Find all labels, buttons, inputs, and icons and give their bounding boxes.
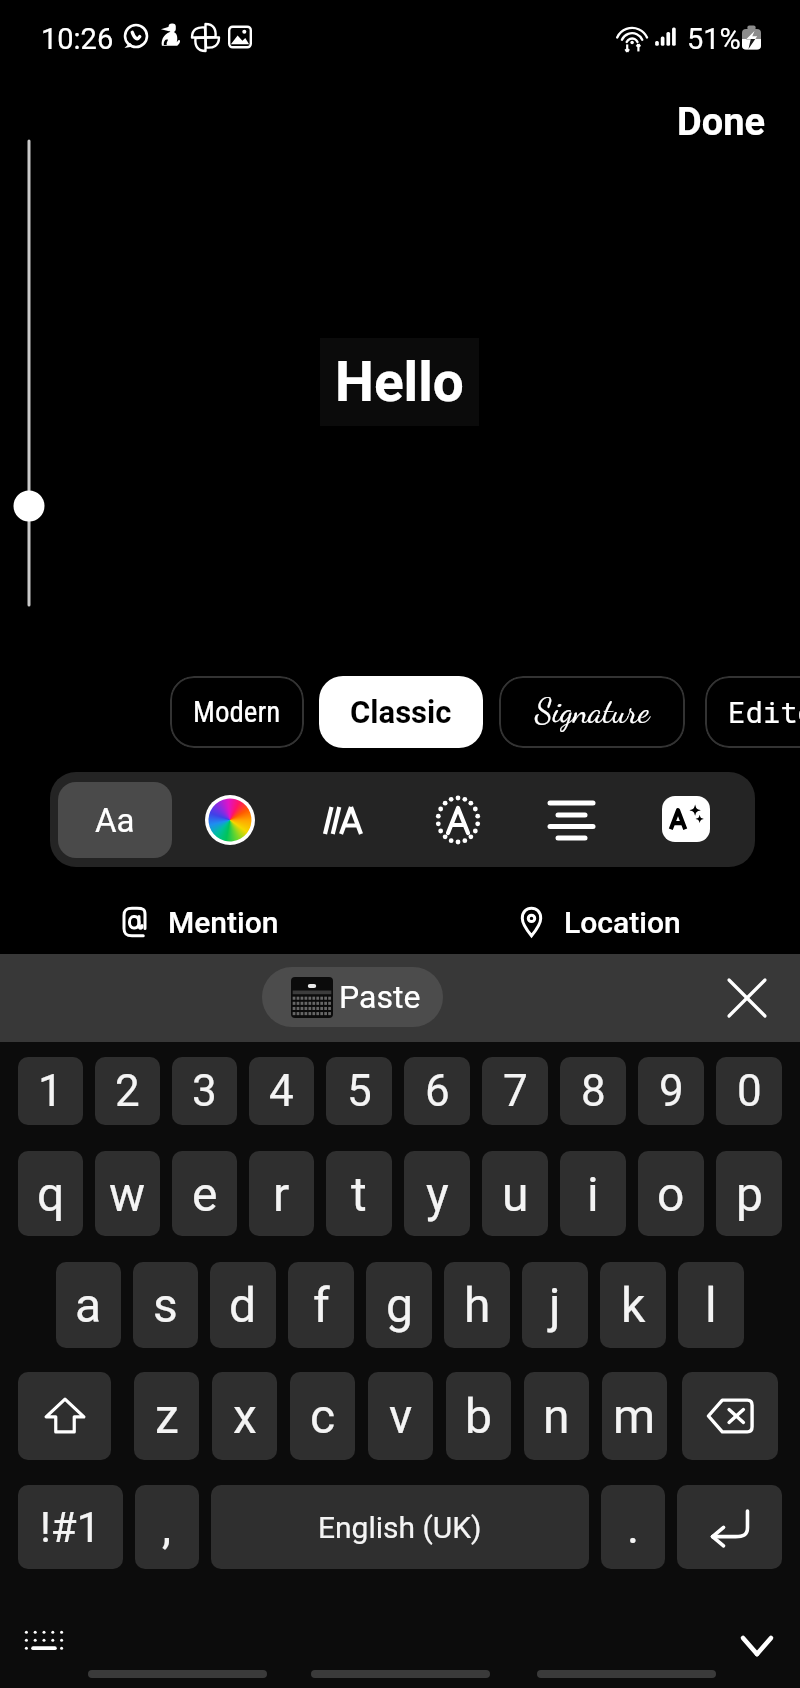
button[interactable]: u (482, 1151, 548, 1236)
staticText: Done (677, 100, 766, 145)
button[interactable]: i (560, 1151, 626, 1236)
button[interactable]: Modern (170, 676, 304, 748)
button[interactable]: 3 (172, 1057, 237, 1125)
staticText: 5 (347, 1065, 372, 1117)
staticText: y (426, 1166, 449, 1222)
staticText: u (502, 1166, 529, 1222)
staticText: r (273, 1166, 290, 1222)
button[interactable]: g (366, 1262, 432, 1348)
button[interactable]: Enter (677, 1485, 782, 1569)
staticText: m (613, 1388, 656, 1444)
staticText: 8 (581, 1065, 606, 1117)
button[interactable]: a (56, 1262, 121, 1348)
button[interactable]: Align (544, 792, 599, 847)
button[interactable]: Shift (18, 1372, 111, 1460)
button[interactable]: s (133, 1262, 198, 1348)
button[interactable]: 5 (326, 1057, 392, 1125)
staticText: Editor (728, 693, 800, 731)
button[interactable]: m (602, 1372, 667, 1460)
staticText: s (153, 1277, 178, 1333)
staticText: English (UK) (318, 1510, 482, 1545)
button[interactable]: 8 (560, 1057, 626, 1125)
staticText: 3 (192, 1065, 217, 1117)
button[interactable]: y (404, 1151, 470, 1236)
button[interactable]: n (524, 1372, 589, 1460)
button[interactable]: , (135, 1485, 199, 1569)
button[interactable]: Hello (320, 338, 479, 426)
button[interactable]: l (678, 1262, 744, 1348)
staticText: g (386, 1277, 413, 1333)
staticText: w (109, 1166, 146, 1222)
button[interactable]: Animate (662, 796, 710, 842)
staticText: o (657, 1166, 685, 1222)
staticText: Location (564, 905, 681, 940)
button[interactable]: r (249, 1151, 314, 1236)
button[interactable]: Signature (499, 676, 685, 748)
button[interactable]: d (210, 1262, 276, 1348)
button[interactable]: English (UK) (211, 1485, 589, 1569)
button[interactable]: v (368, 1372, 433, 1460)
staticText: p (736, 1166, 763, 1222)
button[interactable]: Keyboard layout (22, 1618, 66, 1662)
button[interactable]: Text style (316, 792, 371, 847)
button[interactable]: p (716, 1151, 782, 1236)
staticText: 4 (269, 1065, 294, 1117)
button[interactable]: Aa (58, 782, 172, 858)
button[interactable]: Colour (202, 792, 257, 847)
button[interactable]: 1 (18, 1057, 83, 1125)
staticText: t (351, 1166, 367, 1222)
button[interactable]: 4 (249, 1057, 314, 1125)
button[interactable]: Close (722, 973, 772, 1023)
staticText: Signature (535, 692, 650, 732)
button[interactable]: 2 (95, 1057, 160, 1125)
staticText: Hello (335, 350, 464, 414)
button[interactable]: Backspace (682, 1372, 778, 1460)
button[interactable]: 7 (482, 1057, 548, 1125)
staticText: !#1 (40, 1503, 101, 1552)
button[interactable]: . (601, 1485, 665, 1569)
staticText: 0 (737, 1065, 762, 1117)
staticText: l (705, 1277, 717, 1333)
button[interactable]: f (288, 1262, 354, 1348)
staticText: 6 (425, 1065, 450, 1117)
staticText: Mention (168, 905, 279, 940)
staticText: i (587, 1166, 599, 1222)
button[interactable]: b (446, 1372, 511, 1460)
button[interactable]: j (522, 1262, 588, 1348)
button[interactable]: c (290, 1372, 355, 1460)
button[interactable]: !#1 (18, 1485, 123, 1569)
button[interactable]: Paste (262, 967, 443, 1027)
button[interactable]: 6 (404, 1057, 470, 1125)
staticText: x (233, 1388, 257, 1444)
button[interactable]: Editor (705, 676, 800, 748)
button[interactable]: w (95, 1151, 160, 1236)
staticText: , (162, 1500, 172, 1554)
button[interactable]: 0 (716, 1057, 782, 1125)
staticText: c (310, 1388, 336, 1444)
button[interactable]: Text size (14, 138, 44, 608)
button[interactable]: Mention (0, 884, 400, 960)
staticText: z (155, 1388, 179, 1444)
button[interactable]: 9 (638, 1057, 704, 1125)
button[interactable]: o (638, 1151, 704, 1236)
staticText: v (389, 1388, 413, 1444)
button[interactable]: Glow (430, 792, 485, 847)
button[interactable]: Hide keyboard (731, 1620, 783, 1672)
button[interactable]: t (326, 1151, 392, 1236)
staticText: Aa (95, 801, 135, 840)
button[interactable]: z (134, 1372, 199, 1460)
button[interactable]: k (600, 1262, 666, 1348)
staticText: e (192, 1166, 218, 1222)
button[interactable]: e (172, 1151, 237, 1236)
button[interactable]: Classic (319, 676, 483, 748)
button[interactable]: q (18, 1151, 83, 1236)
button[interactable]: x (212, 1372, 277, 1460)
staticText: Paste (339, 978, 421, 1016)
staticText: 9 (659, 1065, 684, 1117)
button[interactable]: h (444, 1262, 510, 1348)
staticText: b (465, 1388, 492, 1444)
staticText: k (621, 1277, 646, 1333)
staticText: q (37, 1166, 65, 1222)
button[interactable]: Location (400, 884, 800, 960)
button[interactable]: Done (669, 94, 774, 151)
